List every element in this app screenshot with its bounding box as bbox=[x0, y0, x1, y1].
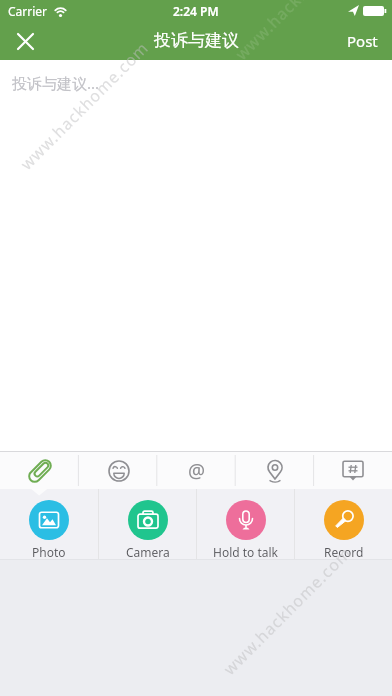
staticText: www.hackhome.com bbox=[230, 0, 368, 65]
staticText: 投诉与建议 bbox=[154, 30, 239, 51]
staticText: Post bbox=[347, 31, 378, 51]
button[interactable]: @ bbox=[158, 452, 236, 489]
staticText: @ bbox=[188, 458, 206, 484]
staticText: Hold to talk bbox=[213, 544, 279, 559]
button[interactable]: Hold to talk bbox=[197, 489, 294, 559]
button[interactable] bbox=[79, 452, 158, 489]
staticText: www.hackhome.com bbox=[218, 542, 356, 680]
staticText: 2:24 PM bbox=[173, 3, 219, 19]
staticText: Photo bbox=[32, 544, 66, 559]
button[interactable]: Photo bbox=[0, 489, 98, 559]
button[interactable] bbox=[0, 452, 79, 489]
button[interactable]: Camera bbox=[99, 489, 196, 559]
staticText: Camera bbox=[126, 544, 170, 559]
button[interactable] bbox=[314, 452, 392, 489]
staticText: 投诉与建议... bbox=[12, 73, 100, 93]
button[interactable] bbox=[236, 452, 314, 489]
button[interactable]: Record bbox=[295, 489, 392, 559]
staticText: www.hackhome.com bbox=[15, 37, 153, 175]
staticText: Record bbox=[324, 544, 364, 559]
button[interactable]: Post bbox=[347, 31, 378, 51]
button[interactable] bbox=[10, 26, 40, 56]
staticText: Carrier bbox=[8, 3, 48, 19]
